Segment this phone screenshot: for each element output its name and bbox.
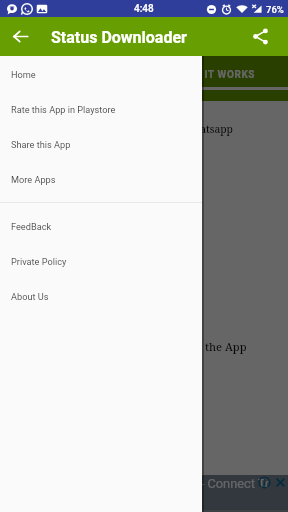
staticText: Home <box>11 69 36 80</box>
staticText: More Apps <box>11 174 56 185</box>
button[interactable]: Private Policy <box>0 244 202 279</box>
button[interactable]: Ad - Connect To Free WiFi <box>0 475 288 512</box>
staticText: 3. the App <box>193 339 247 354</box>
staticText: HOW IT WORKS <box>177 69 256 81</box>
button[interactable]: Home <box>0 57 202 92</box>
button[interactable]: FeedBack <box>0 209 202 244</box>
staticText: Status Downloader <box>51 28 187 47</box>
button[interactable]: Share this App <box>0 127 202 162</box>
staticText: Private Policy <box>11 256 67 267</box>
staticText: FeedBack <box>11 221 52 232</box>
button[interactable]: More Apps <box>0 162 202 197</box>
button[interactable]: Back <box>0 17 40 56</box>
staticText: Share this App <box>11 139 71 150</box>
staticText: 1. Open Whatsapp <box>143 122 233 136</box>
staticText: Rate this App in Playstore <box>11 104 116 115</box>
staticText: 76% <box>266 4 284 15</box>
button[interactable]: Rate this App in Playstore <box>0 92 202 127</box>
staticText: Ad - Connect To Free WiFi <box>182 476 268 491</box>
button[interactable]: About Us <box>0 279 202 314</box>
staticText: 4:48 <box>134 3 154 15</box>
button[interactable]: Share <box>244 17 276 56</box>
staticText: About Us <box>11 291 49 302</box>
